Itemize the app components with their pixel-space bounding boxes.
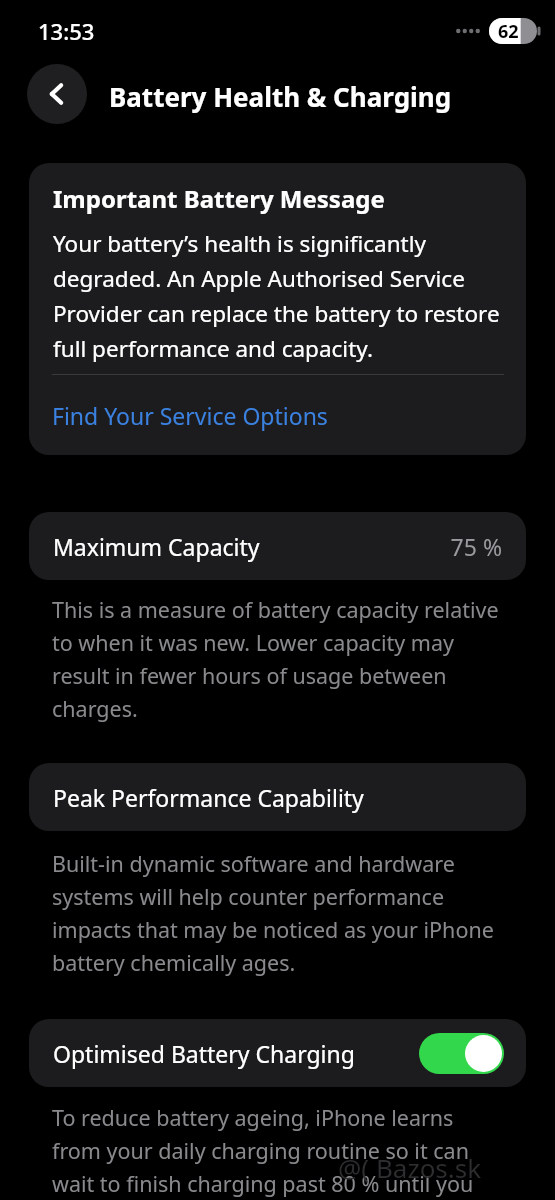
button[interactable]: Back xyxy=(27,64,87,124)
staticText: Battery Health & Charging xyxy=(109,79,452,114)
button[interactable]: Find Your Service Options xyxy=(29,391,526,455)
staticText: 62 xyxy=(498,19,519,44)
staticText: @( Bazos.sk xyxy=(338,1150,482,1185)
staticText: Important Battery Message xyxy=(53,182,385,215)
staticText: Maximum Capacity xyxy=(53,531,260,562)
button[interactable]: Optimised Battery Charging, on xyxy=(419,1033,504,1074)
staticText: Your battery’s health is significantly d… xyxy=(53,228,504,364)
button[interactable]: Peak Performance Capability xyxy=(29,763,526,831)
staticText: Find Your Service Options xyxy=(52,400,328,431)
staticText: 13:53 xyxy=(38,16,95,46)
staticText: 75 % xyxy=(450,531,502,562)
staticText: To reduce battery ageing, iPhone learns … xyxy=(52,1103,507,1199)
staticText: Optimised Battery Charging xyxy=(53,1038,355,1069)
staticText: Peak Performance Capability xyxy=(53,782,364,813)
staticText: Built-in dynamic software and hardware s… xyxy=(52,849,507,978)
staticText: This is a measure of battery capacity re… xyxy=(52,595,507,724)
button[interactable]: Optimised Battery Charging xyxy=(29,1019,526,1087)
button[interactable]: Maximum Capacity xyxy=(29,512,526,580)
